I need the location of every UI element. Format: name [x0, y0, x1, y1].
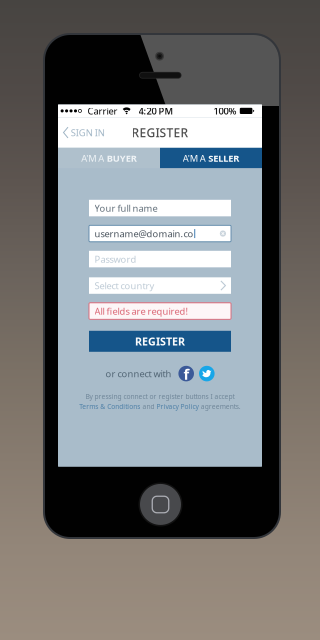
button[interactable]: Select country	[89, 277, 231, 294]
button[interactable]: Connect with Facebook	[178, 366, 194, 381]
staticText: f	[183, 364, 189, 384]
button[interactable]: Connect with Twitter	[199, 366, 215, 381]
staticText: Privacy Policy	[157, 402, 199, 411]
staticText: SELLER	[208, 152, 239, 164]
staticText: By pressing connect or register buttons …	[85, 392, 234, 401]
staticText: and	[142, 402, 154, 411]
staticText: Password	[94, 253, 136, 265]
staticText: username@domain.co	[94, 227, 193, 240]
staticText: Your full name	[94, 202, 157, 214]
button[interactable]: Password	[89, 251, 231, 267]
button[interactable]: REGISTER	[89, 331, 231, 352]
button[interactable]: Privacy Policy	[157, 402, 199, 411]
staticText: REGISTER	[135, 334, 185, 348]
staticText: Carrier	[87, 105, 117, 117]
button[interactable]: A'M A	[58, 148, 160, 168]
staticText: SIGN IN	[71, 126, 105, 139]
staticText: A'M A	[183, 152, 206, 164]
button[interactable]: SIGN IN	[58, 122, 111, 142]
staticText: Terms & Conditions	[79, 402, 140, 411]
staticText: Select country	[94, 279, 154, 292]
staticText: BUYER	[107, 152, 137, 164]
staticText: REGISTER	[131, 125, 188, 140]
button[interactable]: Your full name	[89, 200, 231, 216]
button[interactable]: Terms & Conditions	[79, 402, 140, 411]
staticText: 4:20 PM	[138, 105, 173, 117]
staticText: 100%	[214, 105, 237, 117]
staticText: agreements.	[201, 402, 241, 411]
button[interactable]: A'M A	[160, 148, 262, 168]
staticText: A'M A	[81, 152, 104, 164]
button[interactable]: username@domain.co	[89, 225, 231, 242]
staticText: All fields are required!	[94, 305, 188, 317]
staticText: or connect with	[105, 367, 171, 380]
